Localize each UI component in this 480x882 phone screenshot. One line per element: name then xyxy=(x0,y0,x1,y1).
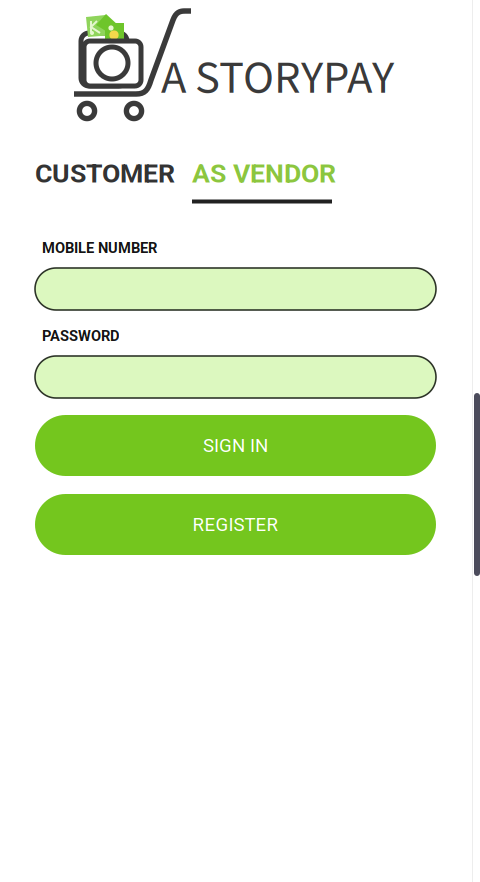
button[interactable]: REGISTER xyxy=(35,494,436,555)
button[interactable]: CUSTOMER xyxy=(35,160,175,203)
staticText: REGISTER xyxy=(192,514,278,535)
staticText: PASSWORD xyxy=(42,327,120,345)
staticText: A STORYPAY xyxy=(161,45,394,111)
staticText: MOBILE NUMBER xyxy=(42,239,157,257)
staticText: SIGN IN xyxy=(203,435,268,456)
button[interactable]: SIGN IN xyxy=(35,415,436,476)
staticText: CUSTOMER xyxy=(35,158,175,189)
button[interactable]: AS VENDOR xyxy=(192,160,336,203)
staticText: AS VENDOR xyxy=(192,158,336,189)
